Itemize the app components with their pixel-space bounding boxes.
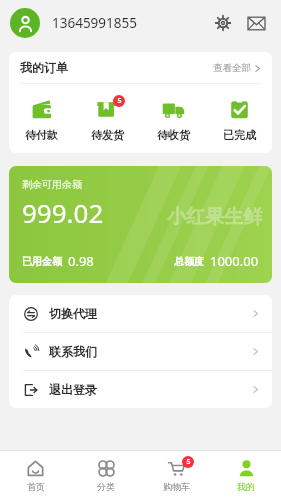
button[interactable]: 5 <box>141 451 211 500</box>
staticText: 首页 <box>27 481 45 492</box>
button[interactable]: 我的 <box>211 451 281 500</box>
staticText: 剩余可用余额 <box>22 178 82 191</box>
button[interactable]: 退出登录 <box>9 371 272 408</box>
staticText: 13645991855 <box>52 14 137 32</box>
button[interactable]: Settings <box>210 10 236 36</box>
staticText: 5 <box>186 457 191 467</box>
button[interactable]: 查看全部 <box>213 62 261 74</box>
button[interactable]: 联系我们 <box>9 333 272 370</box>
button[interactable]: 待付款 <box>9 96 74 142</box>
staticText: 待收货 <box>157 128 190 142</box>
button[interactable]: 待收货 <box>140 96 206 142</box>
button[interactable]: Profile avatar <box>10 8 40 38</box>
button[interactable]: 已完成 <box>206 96 272 142</box>
staticText: 已完成 <box>223 128 256 142</box>
button[interactable]: 小红果生鲜 <box>9 166 272 283</box>
staticText: 退出登录 <box>49 382 97 397</box>
button[interactable]: 5 <box>74 96 140 142</box>
staticText: 5 <box>117 96 122 106</box>
staticText: 已用金额 <box>22 255 62 268</box>
button[interactable]: 首页 <box>0 451 71 500</box>
staticText: 1000.00 <box>210 252 259 270</box>
staticText: 购物车 <box>163 481 190 492</box>
button[interactable]: 切换代理 <box>9 295 272 332</box>
staticText: 我的 <box>237 481 255 492</box>
button[interactable]: Messages <box>243 10 269 36</box>
staticText: 0.98 <box>68 252 94 270</box>
staticText: 切换代理 <box>49 306 97 321</box>
staticText: 小红果生鲜 <box>167 205 262 229</box>
staticText: 联系我们 <box>49 344 97 359</box>
button[interactable]: 分类 <box>71 451 141 500</box>
staticText: 我的订单 <box>20 60 68 75</box>
staticText: 待发货 <box>91 128 124 142</box>
staticText: 待付款 <box>25 128 58 142</box>
staticText: 分类 <box>97 481 115 492</box>
staticText: 查看全部 <box>213 62 251 74</box>
staticText: 总额度 <box>174 255 204 268</box>
staticText: 999.02 <box>22 195 104 230</box>
